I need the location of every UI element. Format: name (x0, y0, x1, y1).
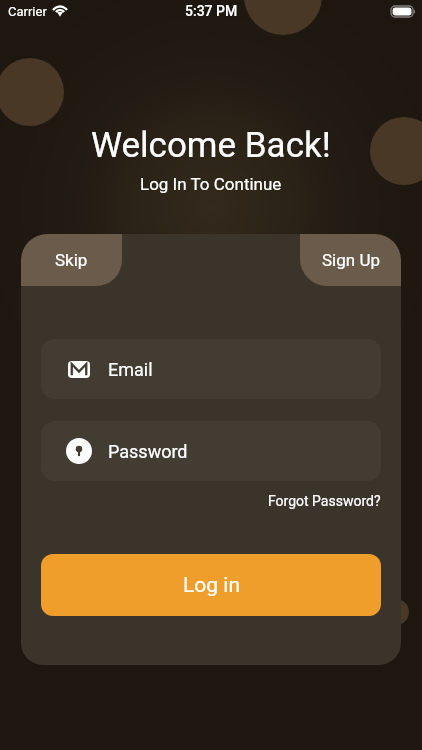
staticText: Email (108, 359, 153, 380)
staticText: Carrier (8, 4, 47, 19)
staticText: Welcome Back! (91, 125, 331, 166)
button[interactable]: Email (41, 339, 381, 399)
staticText: Password (108, 441, 188, 462)
button[interactable]: Password (41, 421, 381, 481)
staticText: 5:37 PM (185, 3, 238, 19)
staticText: Sign Up (322, 250, 380, 270)
button[interactable]: Forgot Password? (268, 493, 381, 509)
button[interactable]: Log in (41, 554, 381, 616)
button[interactable]: Skip (21, 234, 122, 286)
staticText: Skip (55, 250, 88, 270)
button[interactable]: Sign Up (300, 234, 401, 286)
staticText: Log in (183, 573, 240, 598)
staticText: Log In To Continue (140, 174, 282, 194)
